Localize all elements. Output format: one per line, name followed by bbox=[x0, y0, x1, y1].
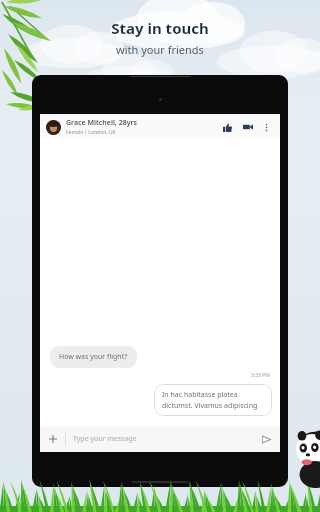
staticText: Grace Mitchell, 28yrs bbox=[66, 118, 137, 128]
button[interactable]: Profile photo bbox=[40, 114, 280, 140]
staticText: Stay in touch bbox=[111, 18, 209, 38]
button[interactable]: Add attachment bbox=[40, 426, 280, 452]
button[interactable]: Like bbox=[218, 118, 236, 136]
staticText: 3:33 PM bbox=[251, 372, 270, 379]
staticText: Female | London, UK bbox=[66, 129, 116, 136]
staticText: with your friends bbox=[116, 42, 204, 57]
staticText: In hac habitasse platea dictumst. Vivamu… bbox=[162, 390, 264, 410]
button[interactable]: In hac habitasse platea dictumst. Vivamu… bbox=[154, 384, 272, 416]
staticText: How was your flight? bbox=[59, 352, 128, 362]
button[interactable]: Profile photo bbox=[46, 120, 61, 135]
button[interactable]: Add attachment bbox=[44, 430, 62, 448]
button[interactable]: How was your flight? bbox=[50, 346, 137, 368]
button[interactable]: Video call bbox=[239, 118, 257, 136]
staticText: Type your message bbox=[73, 434, 256, 444]
button[interactable]: Send bbox=[256, 429, 276, 449]
button[interactable]: More options bbox=[258, 119, 274, 135]
